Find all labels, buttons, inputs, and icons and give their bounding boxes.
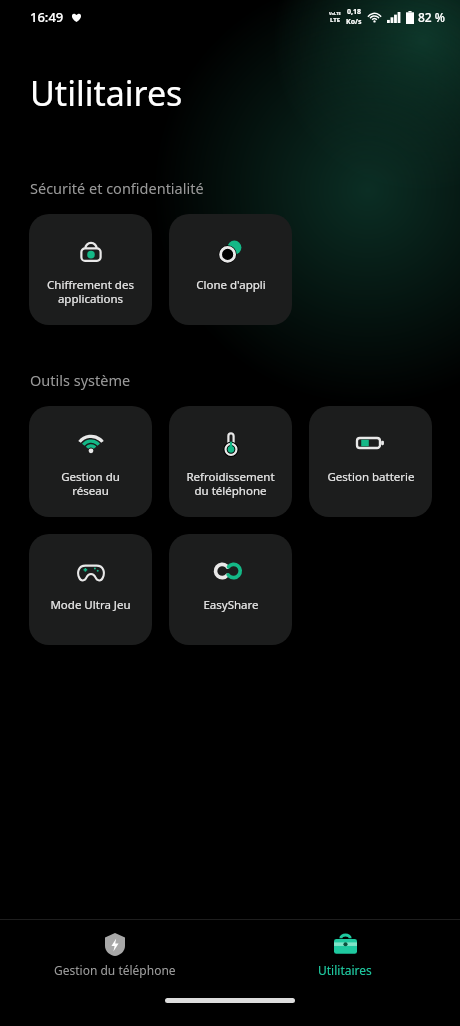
button[interactable]: App encryption <box>29 214 152 325</box>
staticText: Sécurité et confidentialité <box>30 178 204 198</box>
button[interactable]: App clone <box>169 214 292 325</box>
staticText: EasyShare <box>203 597 259 613</box>
other: App encryption <box>78 238 104 264</box>
button[interactable]: Utilitaires <box>230 920 460 990</box>
staticText: Utilitaires <box>30 70 183 116</box>
staticText: LTE <box>330 16 341 24</box>
staticText: Gestion du réseau <box>61 469 120 498</box>
staticText: Ko/s <box>346 17 362 27</box>
other: Battery management <box>357 434 385 452</box>
other: Phone cooling <box>218 430 244 456</box>
other: Ultra game mode <box>77 561 105 582</box>
button[interactable]: Gestion du téléphone <box>0 920 230 990</box>
other: App clone <box>218 238 244 264</box>
staticText: 82 % <box>418 9 446 25</box>
staticText: Gestion batterie <box>327 469 415 485</box>
staticText: Refroidissement du téléphone <box>186 469 275 498</box>
staticText: 16:49 <box>30 8 64 26</box>
staticText: Outils système <box>30 370 131 390</box>
button[interactable]: EasyShare <box>169 534 292 645</box>
button[interactable]: Phone cooling <box>169 406 292 517</box>
button[interactable]: Network management <box>29 406 152 517</box>
staticText: Utilitaires <box>318 962 372 978</box>
other: EasyShare <box>218 558 244 584</box>
button[interactable]: Ultra game mode <box>29 534 152 645</box>
staticText: Gestion du téléphone <box>54 962 176 978</box>
button[interactable]: Battery management <box>309 406 432 517</box>
staticText: Chiffrement des applications <box>47 277 134 306</box>
staticText: Clone d'appli <box>196 277 266 293</box>
staticText: Mode Ultra Jeu <box>50 597 131 613</box>
other: Network management <box>77 429 105 457</box>
staticText: 0,18 <box>347 7 362 17</box>
staticText: VoLTE <box>329 11 341 16</box>
